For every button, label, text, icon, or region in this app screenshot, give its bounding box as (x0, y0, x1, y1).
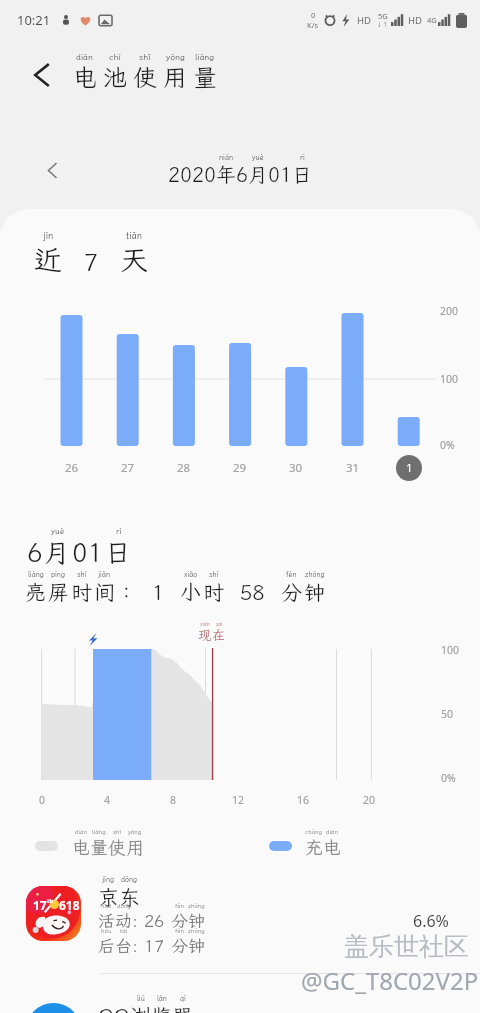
staticText: 10:21 (17, 11, 51, 29)
staticText: 分 (281, 578, 302, 606)
staticText: 月 (248, 161, 268, 187)
staticText: ↓↑ (376, 21, 389, 29)
staticText: 28 (177, 460, 191, 476)
staticText: 29 (233, 460, 247, 476)
staticText: zhōng (188, 902, 205, 910)
staticText: 览 (151, 1002, 172, 1013)
staticText: 浏 (130, 1002, 151, 1013)
staticText: 电 (73, 61, 97, 93)
staticText: shí (77, 570, 87, 579)
staticText: píng (51, 570, 66, 579)
staticText: 年 (216, 161, 236, 187)
staticText: 时 (71, 578, 92, 606)
staticText: 0% (440, 438, 455, 452)
staticText: diàn (75, 828, 88, 836)
staticText: 100 (441, 643, 460, 657)
staticText: HD (408, 14, 422, 27)
staticText: 时 (203, 578, 224, 606)
staticText: tái (120, 927, 128, 935)
staticText: 8 (170, 793, 177, 807)
staticText: qì (180, 994, 186, 1003)
staticText: 使 (108, 835, 126, 859)
staticText: diàn (326, 828, 339, 836)
staticText: 1 (406, 460, 413, 476)
staticText: 16 (297, 793, 310, 807)
staticText: 4 (104, 793, 111, 807)
staticText: zhōng (188, 927, 205, 935)
staticText: 台 (115, 934, 132, 956)
staticText: 26 (65, 460, 79, 476)
staticText: 天 (120, 241, 149, 278)
staticText: 电 (323, 835, 341, 859)
staticText: dōng (121, 875, 138, 884)
staticText: 月 (44, 535, 71, 569)
staticText: lǎn (157, 994, 167, 1003)
staticText: diàn (76, 51, 94, 62)
staticText: 近 (34, 241, 63, 278)
staticText: nián (219, 153, 234, 162)
staticText: 京 (98, 883, 119, 911)
staticText: 亮 (25, 578, 46, 606)
staticText: : 26 (132, 909, 171, 931)
staticText: huó (101, 902, 112, 910)
staticText: 0 (39, 793, 46, 807)
staticText: QQ (98, 1002, 130, 1013)
staticText: 电 (72, 835, 90, 859)
staticText: liàng (28, 570, 44, 579)
staticText: jiān (98, 570, 111, 579)
staticText: 活 (98, 909, 115, 931)
staticText: shí (209, 570, 219, 579)
staticText: chí (109, 51, 121, 62)
staticText: yòng (128, 828, 142, 836)
staticText: yuè (51, 526, 65, 537)
staticText: xiàn (200, 621, 210, 628)
button[interactable]: QQ (0, 974, 480, 1013)
staticText: 钟 (188, 909, 205, 931)
staticText: 618 (59, 897, 80, 913)
staticText: 充 (305, 835, 323, 859)
staticText: 盖乐世社区 (344, 931, 469, 962)
staticText: 5G (378, 11, 388, 21)
staticText: HD (357, 14, 371, 27)
staticText: liàng (92, 828, 106, 836)
staticText: 20 (363, 793, 376, 807)
staticText: zhōng (305, 570, 325, 579)
staticText: jìn (43, 230, 54, 242)
staticText: 100 (440, 372, 459, 386)
staticText: 现 (198, 627, 212, 644)
staticText: yuè (252, 153, 264, 162)
staticText: dòng (117, 902, 131, 910)
button[interactable]: Back (24, 58, 58, 92)
staticText: xiǎo (184, 570, 198, 579)
staticText: 量 (90, 835, 108, 859)
staticText: liú (137, 994, 145, 1003)
staticText: 用 (126, 835, 144, 859)
staticText: 日 (292, 161, 312, 187)
staticText: fēn (175, 902, 185, 910)
staticText: jīng (102, 875, 115, 884)
staticText: 0% (441, 771, 456, 785)
staticText: liàng (195, 51, 215, 62)
staticText: chōng (305, 828, 323, 836)
staticText: rì (116, 526, 122, 537)
staticText: 分 (171, 909, 188, 931)
staticText: 日 (105, 535, 132, 569)
staticText: 小 (180, 578, 201, 606)
staticText: 58 (225, 578, 280, 606)
button[interactable]: Previous day (38, 156, 66, 184)
staticText: yòng (166, 51, 185, 62)
staticText: @GC_T8C02V2P (301, 964, 479, 997)
staticText: th (47, 897, 53, 904)
staticText: shǐ (113, 828, 122, 836)
staticText: 12 (232, 793, 245, 807)
staticText: 01 (72, 535, 104, 569)
staticText: 使 (133, 61, 157, 93)
staticText: 钟 (304, 578, 325, 606)
staticText: 间 (94, 578, 115, 606)
staticText: 6 (27, 535, 43, 569)
staticText: 4G (427, 15, 437, 25)
staticText: 分 (171, 934, 188, 956)
staticText: 量 (193, 61, 217, 93)
staticText: 7 (66, 245, 117, 278)
button[interactable]: 17 (0, 882, 480, 970)
